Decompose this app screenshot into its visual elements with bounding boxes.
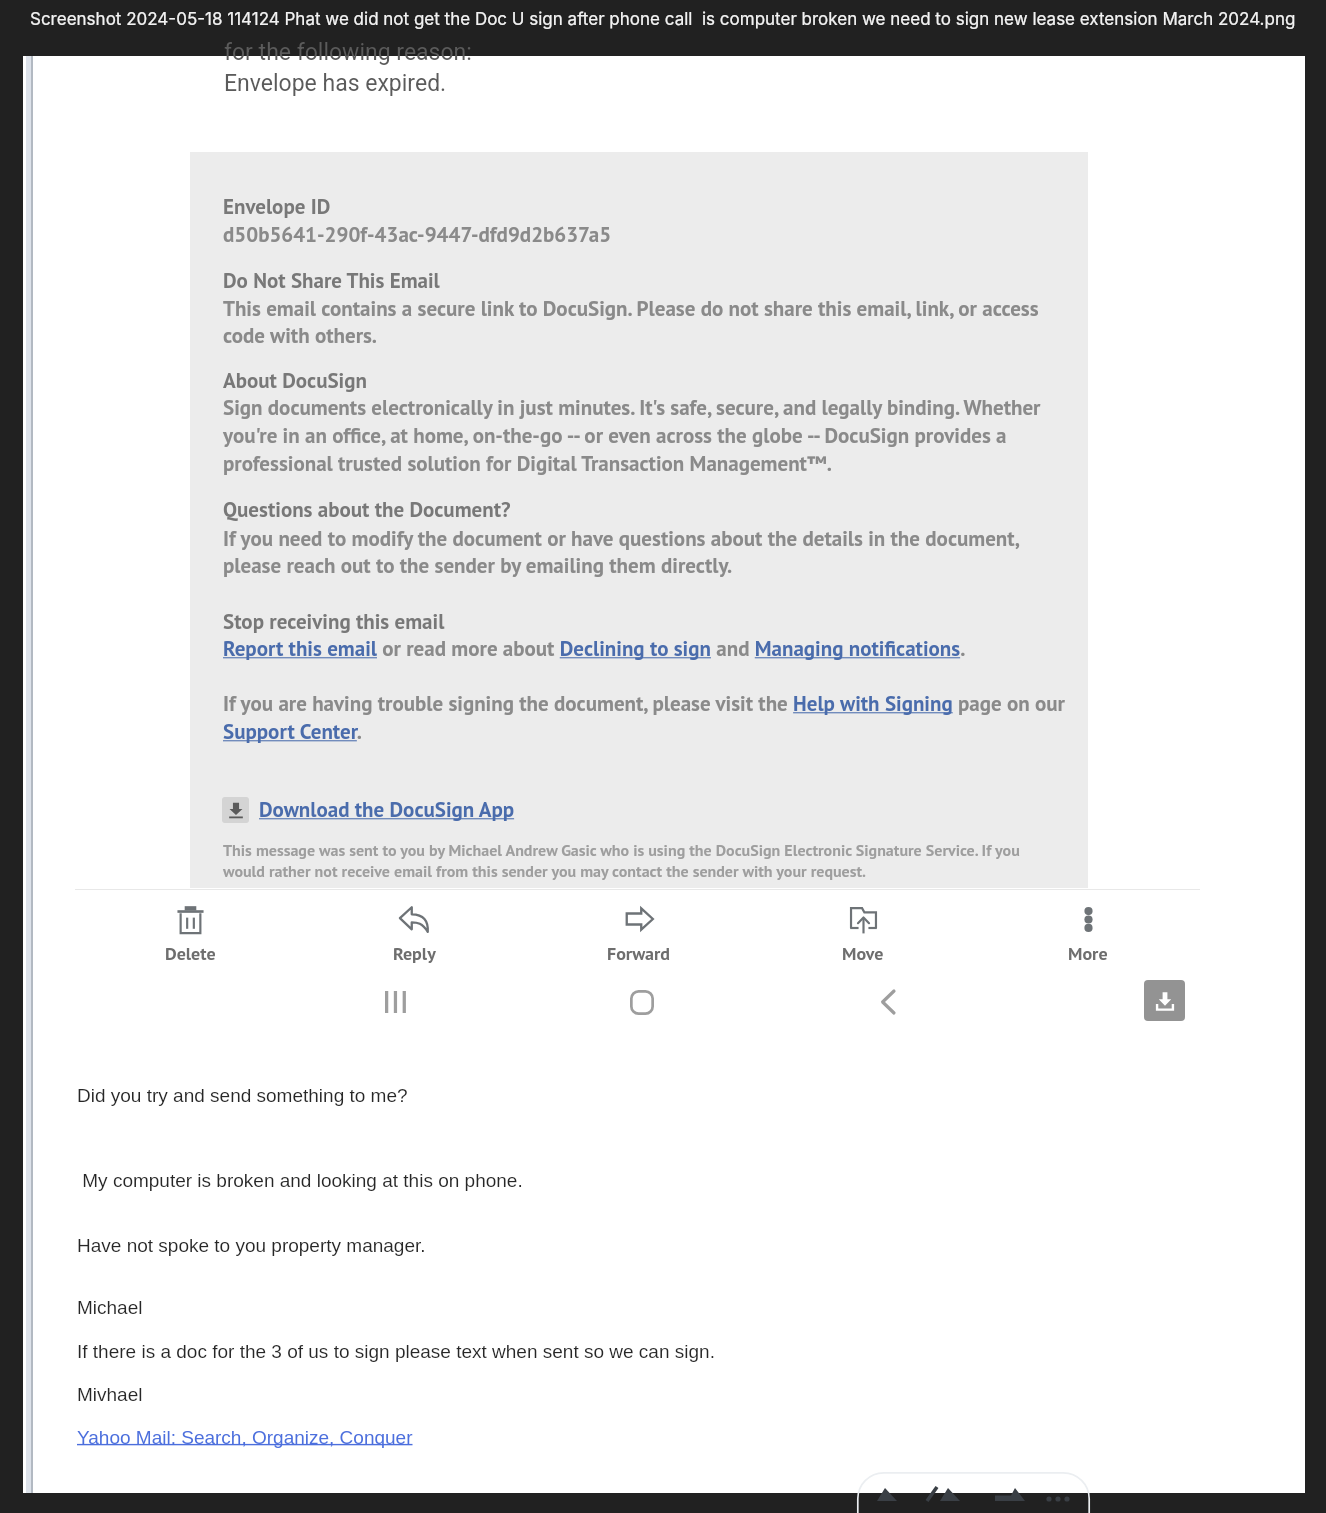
staticText: please reach out to the sender by emaili… (223, 552, 733, 579)
staticText: code with others. (223, 322, 378, 349)
staticText: d50b5641-290f-43ac-9447-dfd9d2b637a5 (223, 221, 612, 248)
staticText: Do Not Share This Email (223, 267, 440, 294)
button[interactable]: Report this email or read more about Dec… (223, 635, 966, 662)
staticText: Michael (77, 1297, 143, 1318)
button[interactable]: Move (808, 896, 918, 965)
staticText: Questions about the Document? (223, 496, 511, 523)
staticText: If there is a doc for the 3 of us to sig… (77, 1341, 715, 1362)
button[interactable]: Download (1144, 980, 1185, 1021)
staticText: Reply (393, 942, 436, 965)
staticText: Did you try and send something to me? (77, 1085, 408, 1106)
staticText: Move (842, 942, 884, 965)
staticText: Have not spoke to you property manager. (77, 1235, 426, 1256)
button[interactable]: Recent apps (355, 972, 435, 1032)
staticText: Mivhael (77, 1384, 143, 1405)
button[interactable]: Delete (135, 896, 245, 965)
button[interactable]: Reply (359, 896, 469, 965)
button[interactable]: Reply actions (857, 1472, 1090, 1493)
staticText: Envelope ID (223, 193, 331, 220)
staticText: If you are having trouble signing the do… (223, 690, 1065, 717)
button[interactable]: Home (602, 972, 682, 1032)
staticText: Screenshot 2024-05-18 114124 Phat we did… (30, 9, 1296, 30)
button[interactable]: Download the DocuSign App (222, 796, 515, 823)
button[interactable]: More (1033, 896, 1143, 965)
staticText: If you need to modify the document or ha… (223, 525, 1020, 552)
staticText: My computer is broken and looking at thi… (77, 1170, 523, 1191)
staticText: Sign documents electronically in just mi… (223, 394, 1041, 421)
staticText: you're in an office, at home, on-the-go … (223, 422, 1007, 449)
staticText: professional trusted solution for Digita… (223, 450, 833, 477)
staticText: Download the DocuSign App (259, 796, 515, 823)
staticText: About DocuSign (223, 367, 367, 394)
staticText: This email contains a secure link to Doc… (223, 295, 1039, 322)
staticText: Delete (165, 942, 216, 965)
staticText: for the following reason: (224, 39, 472, 66)
button[interactable]: Yahoo Mail: Search, Organize, Conquer (77, 1427, 413, 1448)
button[interactable]: Back (847, 972, 927, 1032)
button[interactable]: Forward (584, 896, 694, 965)
staticText: Forward (607, 942, 671, 965)
button[interactable]: Support Center. (223, 718, 363, 745)
staticText: This message was sent to you by Michael … (223, 840, 1020, 861)
staticText: More (1068, 942, 1108, 965)
staticText: would rather not receive email from this… (223, 861, 866, 882)
staticText: Stop receiving this email (223, 608, 445, 635)
staticText: Envelope has expired. (224, 70, 447, 97)
